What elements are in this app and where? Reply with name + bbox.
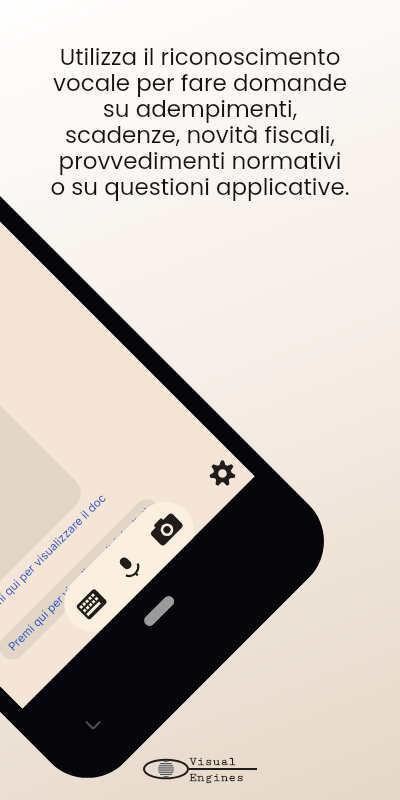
button[interactable]: Premi qui per visualizza altri risultati	[0, 494, 165, 665]
staticText: Utilizza il riconoscimento vocale per fa…	[50, 41, 350, 203]
staticText: Engines	[189, 770, 245, 784]
staticText: Visual	[189, 754, 237, 768]
button[interactable]: Microphone	[89, 528, 168, 606]
button[interactable]: Camera	[127, 490, 205, 569]
staticText: Premi qui per visualizza altri risultati	[5, 505, 154, 654]
button[interactable]: Premi qui per visualizzare il doc	[0, 483, 116, 630]
button[interactable]: Keyboard	[52, 565, 130, 644]
button[interactable]: Settings	[197, 448, 248, 499]
staticText: Premi qui per visualizzare il doc	[0, 490, 109, 623]
